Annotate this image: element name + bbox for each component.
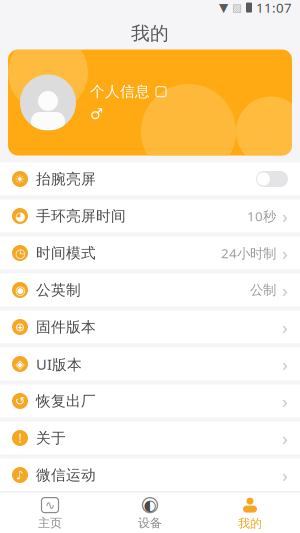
staticText: ♂ — [90, 106, 103, 122]
staticText: › — [282, 463, 288, 487]
button[interactable]: ∿ — [0, 492, 100, 533]
staticText: ↺ — [15, 394, 25, 408]
staticText: › — [282, 204, 288, 228]
button[interactable]: ⊕ — [0, 310, 300, 343]
staticText: 11:07 — [256, 0, 292, 16]
staticText: ♪ — [16, 468, 24, 482]
button[interactable]: ◉ — [0, 273, 300, 306]
staticText: ◈ — [15, 357, 24, 371]
staticText: 设备 — [138, 516, 162, 530]
staticText: ◷ — [15, 246, 25, 260]
staticText: › — [282, 389, 288, 413]
staticText: 公英制 — [36, 281, 81, 299]
button[interactable]: ◐ — [100, 492, 200, 533]
staticText: ▼ — [219, 1, 228, 14]
button[interactable]: ↺ — [0, 384, 300, 417]
staticText: 时间模式 — [36, 244, 96, 262]
button[interactable]: ◕ — [0, 199, 300, 232]
staticText: ◐ — [143, 497, 156, 513]
staticText: › — [282, 315, 288, 339]
staticText: › — [282, 426, 288, 450]
button[interactable]: 个人信息 — [8, 49, 292, 155]
staticText: ! — [18, 430, 21, 446]
staticText: 关于 — [36, 429, 66, 447]
staticText: 固件版本 — [36, 318, 96, 336]
button[interactable]: ◈ — [0, 347, 300, 380]
staticText: ∿ — [45, 498, 55, 512]
staticText: ◉ — [15, 283, 25, 297]
button[interactable]: ◷ — [0, 236, 300, 269]
staticText: 10秒 — [247, 207, 276, 225]
staticText: 微信运动 — [36, 466, 96, 484]
staticText: 主页 — [38, 516, 62, 530]
button[interactable]: ! — [0, 421, 300, 454]
staticText: 抬腕亮屏 — [36, 170, 96, 188]
staticText: 手环亮屏时间 — [36, 207, 126, 225]
staticText: 我的 — [131, 22, 169, 45]
button[interactable]: 我的 — [200, 492, 300, 533]
staticText: › — [282, 278, 288, 302]
staticText: 公制 — [250, 282, 276, 298]
staticText: › — [282, 352, 288, 376]
staticText: ⊕ — [15, 320, 25, 334]
staticText: 我的 — [238, 516, 262, 531]
staticText: 24小时制 — [221, 244, 276, 262]
staticText: 个人信息 — [90, 83, 150, 101]
staticText: 恢复出厂 — [36, 392, 96, 410]
staticText: ◕ — [15, 209, 25, 223]
staticText: › — [282, 241, 288, 265]
staticText: UI版本 — [36, 354, 82, 374]
staticText: ▨ — [232, 1, 242, 13]
button[interactable]: ☀ — [0, 162, 300, 195]
button[interactable]: ♪ — [0, 458, 300, 491]
staticText: ☀ — [14, 172, 25, 186]
